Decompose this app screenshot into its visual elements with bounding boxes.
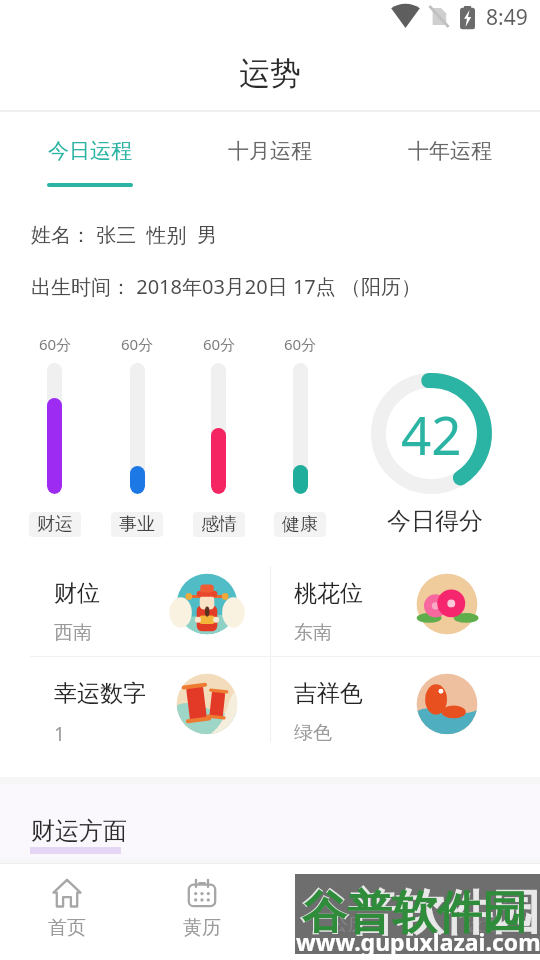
button[interactable]: 桃花位 [270,553,486,653]
staticText: 公历 [331,914,365,935]
button[interactable]: 十月运程 [200,138,340,196]
button[interactable]: 设置 [412,864,532,960]
staticText: 设置 [466,914,500,935]
button[interactable]: 公历 [277,864,397,960]
staticText: 幸运数字 [54,679,146,708]
staticText: 黄历 [183,916,221,940]
other: 首页 [52,878,82,908]
staticText: 财运 [37,513,73,536]
staticText: 42 [401,398,462,470]
staticText: www.gupuxlazai.com [296,926,540,957]
staticText: 今日运程 [48,138,132,164]
staticText: 吉祥色 [294,679,363,708]
staticText: 今日得分 [387,506,483,536]
staticText: 60分 [121,334,154,354]
staticText: 健康 [282,513,318,536]
button[interactable]: 财位 [30,553,246,653]
staticText: 出生时间： 2018年03月20日 17点 （阳历） [31,273,421,300]
staticText: 事业 [119,513,155,536]
staticText: 谷普软件园 [302,885,527,942]
button[interactable]: 幸运数字 [30,653,246,753]
staticText: 西南 [54,621,92,645]
button[interactable]: 首页 [7,864,127,960]
staticText: 姓名： 张三 性别 男 [31,221,217,248]
other: 公历 [322,878,352,908]
staticText: 谷普软件园 [300,883,540,943]
other: 黄历 [187,878,217,908]
staticText: 绿色 [294,721,332,745]
staticText: 感情 [201,513,237,536]
button[interactable]: 十年运程 [380,138,520,196]
staticText: 8:49 [486,3,528,32]
staticText: 60分 [39,334,72,354]
button[interactable]: 吉祥色 [270,653,486,753]
staticText: 桃花位 [294,579,363,608]
button[interactable]: 今日运程 [20,138,160,196]
staticText: 60分 [284,334,317,354]
staticText: 财位 [54,579,100,608]
staticText: 设置 [453,916,491,940]
staticText: 财运方面 [31,816,127,846]
staticText: 60分 [203,334,236,354]
staticText: 1 [54,721,65,747]
staticText: 十月运程 [228,138,312,164]
button[interactable]: 黄历 [142,864,262,960]
staticText: 首页 [48,916,86,940]
staticText: 运势 [239,54,301,93]
staticText: 东南 [294,621,332,645]
staticText: 十年运程 [408,138,492,164]
staticText: 公历 [318,916,356,940]
other: 设置 [457,878,487,908]
